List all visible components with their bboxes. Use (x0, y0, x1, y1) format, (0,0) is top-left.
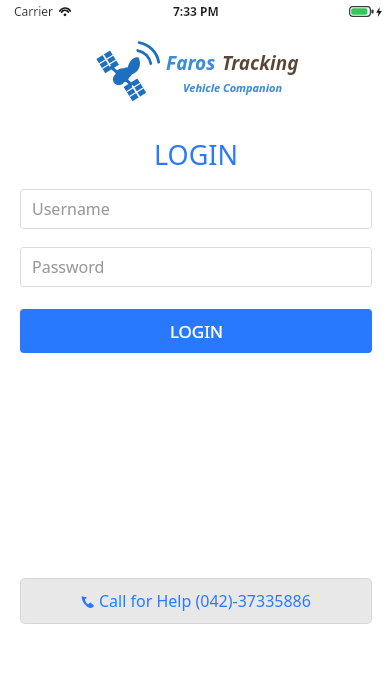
button[interactable]: LOGIN (20, 309, 372, 353)
staticText: Call for Help (042)-37335886 (99, 590, 311, 612)
staticText: 7:33 PM (173, 3, 219, 19)
staticText: Tracking (222, 50, 299, 76)
staticText: Vehicle Companion (183, 80, 283, 95)
button[interactable]: Username (20, 189, 372, 229)
button[interactable]: Password (20, 247, 372, 287)
staticText: LOGIN (0, 136, 392, 173)
staticText: Faros (166, 50, 216, 76)
button[interactable]: Call for Help (042)-37335886 (20, 578, 372, 624)
staticText: Password (32, 256, 105, 278)
staticText: LOGIN (170, 320, 223, 343)
staticText: Username (32, 198, 110, 220)
staticText: Carrier (14, 3, 54, 19)
